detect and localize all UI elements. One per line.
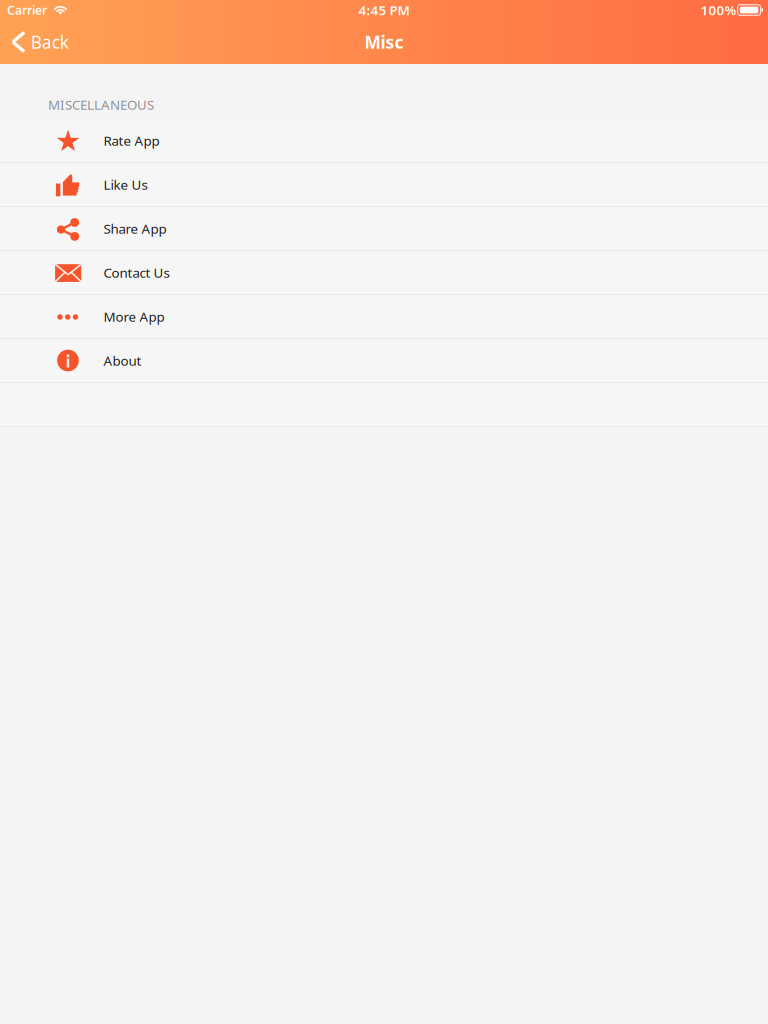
- staticText: Back: [31, 30, 69, 53]
- staticText: Misc: [364, 30, 403, 53]
- button[interactable]: About: [0, 339, 768, 383]
- staticText: Like Us: [103, 176, 147, 193]
- button[interactable]: Like Us: [0, 163, 768, 207]
- staticText: 4:45 PM: [358, 1, 409, 19]
- button[interactable]: More App: [0, 295, 768, 339]
- staticText: Carrier: [7, 2, 47, 18]
- staticText: 100%: [701, 1, 737, 19]
- staticText: About: [103, 352, 141, 369]
- staticText: MISCELLANEOUS: [48, 96, 154, 113]
- button[interactable]: Back: [0, 21, 79, 63]
- staticText: Contact Us: [103, 264, 169, 281]
- staticText: Share App: [103, 220, 166, 237]
- button[interactable]: Rate App: [0, 119, 768, 163]
- button[interactable]: Contact Us: [0, 251, 768, 295]
- button[interactable]: Share App: [0, 207, 768, 251]
- staticText: More App: [103, 308, 164, 325]
- staticText: Rate App: [103, 132, 159, 149]
